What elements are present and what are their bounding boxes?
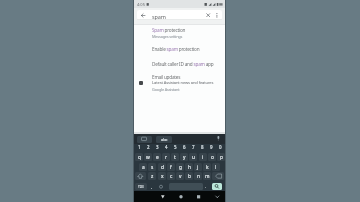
staticText: p — [220, 154, 223, 161]
staticText: x — [161, 173, 164, 180]
button[interactable]: t — [171, 153, 179, 161]
button[interactable]: s — [148, 163, 156, 171]
staticText: b — [188, 173, 191, 180]
staticText: 5 — [174, 144, 177, 150]
button[interactable] — [160, 193, 168, 201]
staticText: h — [188, 164, 191, 171]
button[interactable] — [134, 25, 225, 42]
button[interactable]: v — [176, 172, 184, 180]
button[interactable]: i — [199, 153, 207, 161]
staticText: 4 — [165, 144, 168, 150]
button[interactable]: j — [194, 163, 202, 171]
staticText: a — [142, 164, 145, 171]
button[interactable]: d — [158, 163, 166, 171]
staticText: 6 — [183, 144, 186, 150]
staticText: Default caller ID and spam app — [152, 61, 214, 67]
button[interactable]: n — [194, 172, 202, 180]
button[interactable] — [137, 136, 152, 143]
staticText: y — [183, 154, 186, 161]
button[interactable] — [177, 193, 185, 201]
staticText: spam — [152, 13, 166, 20]
staticText: c — [170, 173, 173, 180]
button[interactable]: y — [180, 153, 188, 161]
staticText: 2 — [147, 144, 150, 150]
button[interactable] — [134, 56, 225, 70]
button[interactable]: o — [208, 153, 216, 161]
staticText: o — [211, 154, 214, 161]
button[interactable] — [194, 193, 202, 201]
staticText: e — [156, 154, 159, 161]
staticText: abc — [161, 137, 168, 142]
button[interactable]: a — [139, 163, 147, 171]
button[interactable]: abc — [156, 136, 172, 143]
staticText: Google Assistant — [152, 87, 180, 92]
staticText: Latest Assistant news and features — [152, 80, 214, 86]
staticText: . — [205, 184, 207, 189]
staticText: d — [161, 164, 164, 171]
staticText: k — [206, 164, 209, 171]
button[interactable]: w — [144, 153, 152, 161]
button[interactable]: r — [162, 153, 170, 161]
button[interactable] — [134, 42, 225, 56]
staticText: 8 — [201, 144, 204, 150]
staticText: g — [179, 164, 182, 171]
staticText: 4:05 — [137, 2, 145, 7]
staticText: Spam protection — [152, 27, 186, 33]
button[interactable]: m — [203, 172, 211, 180]
staticText: z — [151, 173, 154, 180]
button[interactable] — [137, 10, 222, 20]
staticText: j — [197, 164, 199, 171]
staticText: s — [151, 164, 154, 171]
button[interactable]: l — [212, 163, 220, 171]
staticText: 0 — [219, 144, 222, 150]
staticText: f — [170, 164, 172, 171]
staticText: 3 — [156, 144, 159, 150]
button[interactable]: x — [158, 172, 166, 180]
button[interactable] — [135, 172, 146, 180]
button[interactable]: b — [185, 172, 193, 180]
button[interactable]: q — [135, 153, 143, 161]
staticText: 9 — [210, 144, 213, 150]
button[interactable]: h — [185, 163, 193, 171]
staticText: m — [205, 173, 210, 180]
staticText: r — [165, 154, 167, 161]
staticText: n — [197, 173, 200, 180]
staticText: ?123 — [138, 185, 144, 189]
staticText: , — [151, 184, 153, 189]
staticText: Enable spam protection — [152, 46, 200, 52]
button[interactable] — [214, 193, 222, 201]
staticText: w — [146, 154, 150, 161]
button[interactable] — [212, 172, 224, 180]
button[interactable] — [134, 70, 225, 94]
button[interactable]: f — [167, 163, 175, 171]
button[interactable]: ?123 — [135, 183, 147, 190]
staticText: 1 — [138, 144, 141, 150]
staticText: q — [138, 154, 141, 161]
staticText: 7 — [192, 144, 195, 150]
staticText: t — [174, 154, 176, 161]
staticText: Messages settings — [152, 34, 183, 39]
button[interactable]: p — [217, 153, 225, 161]
button[interactable]: u — [189, 153, 197, 161]
staticText: i — [202, 154, 204, 161]
button[interactable] — [212, 183, 222, 190]
staticText: v — [179, 173, 182, 180]
staticText: Email updates — [152, 74, 181, 80]
button[interactable]: g — [176, 163, 184, 171]
button[interactable]: k — [203, 163, 211, 171]
button[interactable]: e — [153, 153, 161, 161]
button[interactable]: z — [148, 172, 156, 180]
button[interactable]: c — [167, 172, 175, 180]
staticText: u — [192, 154, 195, 161]
staticText: l — [215, 164, 217, 171]
